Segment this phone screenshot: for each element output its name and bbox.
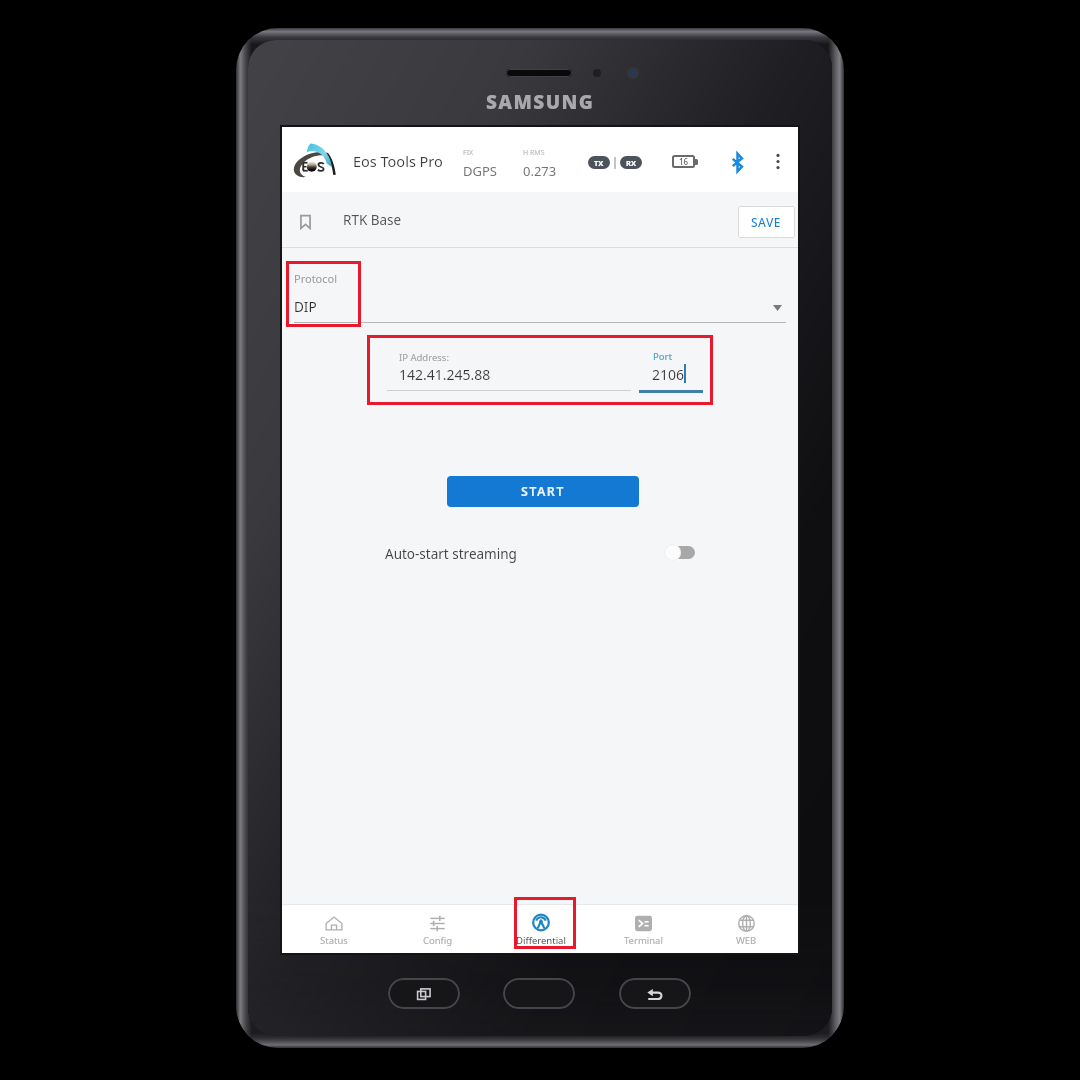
button[interactable]: Home [503, 978, 575, 1009]
staticText: 2106 [652, 365, 685, 384]
staticText: SAMSUNG [486, 89, 595, 115]
staticText: START [521, 483, 565, 500]
button[interactable]: Auto-start streaming toggle, off [660, 541, 700, 563]
staticText: Config [423, 934, 453, 947]
staticText: DGPS [463, 162, 497, 180]
staticText: TX [594, 158, 604, 168]
staticText: 0.273 [523, 162, 557, 180]
staticText: FIX [463, 148, 474, 158]
button[interactable]: More options [770, 152, 786, 171]
staticText: Eos Tools Pro [353, 151, 443, 171]
button[interactable]: Back [619, 978, 691, 1009]
button[interactable]: Terminal [592, 904, 695, 953]
staticText: 142.41.245.88 [399, 365, 491, 384]
button[interactable]: IP Address field [387, 343, 631, 393]
staticText: Status [320, 934, 348, 947]
staticText: SAVE [751, 214, 782, 230]
button[interactable]: Protocol: DIP [282, 255, 798, 327]
button[interactable]: Recent apps [388, 978, 460, 1009]
staticText: 16 [679, 156, 689, 167]
staticText: H RMS [523, 148, 545, 158]
button[interactable]: Bookmark [296, 212, 315, 232]
staticText: RTK Base [343, 211, 402, 229]
button[interactable]: WEB [695, 904, 798, 953]
staticText: DIP [294, 298, 317, 316]
staticText: RX [626, 158, 636, 168]
button[interactable]: Differential [489, 904, 592, 953]
button[interactable]: START [447, 476, 639, 507]
button[interactable]: Bluetooth [729, 152, 746, 173]
button[interactable]: Config [386, 904, 489, 953]
button[interactable]: Port field [639, 343, 703, 393]
staticText: WEB [736, 934, 757, 947]
staticText: Protocol [294, 271, 338, 286]
staticText: Auto-start streaming [385, 545, 517, 563]
staticText: Terminal [624, 934, 663, 947]
staticText: Differential [516, 934, 566, 947]
button[interactable]: Status [282, 904, 386, 953]
staticText: IP Address: [399, 351, 449, 364]
staticText: Port [653, 350, 673, 363]
button[interactable]: SAVE [738, 206, 795, 238]
